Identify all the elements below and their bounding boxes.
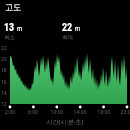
staticText: 22 [1,45,7,52]
staticText: 22:00 [119,109,130,116]
staticText: 고도 [5,2,21,12]
staticText: 6:00 [25,109,41,116]
staticText: 13 [4,22,15,34]
staticText: 14:00 [72,109,88,116]
staticText: 18 [1,67,7,74]
staticText: 최대 [62,34,73,41]
staticText: 10:00 [49,109,65,116]
staticText: 최소 [4,34,15,41]
staticText: 22 [62,22,73,34]
staticText: 12 [1,101,7,108]
staticText: m [17,25,23,33]
staticText: m [75,25,81,33]
staticText: 2:00 [2,109,18,116]
staticText: 시간(시:분:초) [0,118,130,126]
staticText: 16 [1,79,7,86]
staticText: 18:00 [96,109,112,116]
staticText: 20 [1,56,7,63]
staticText: 14 [1,90,7,97]
